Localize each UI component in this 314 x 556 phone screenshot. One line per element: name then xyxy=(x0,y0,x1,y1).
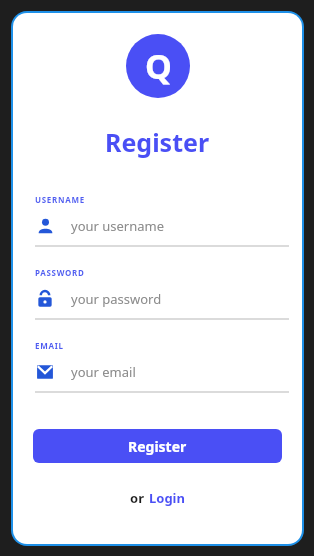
staticText: Login xyxy=(149,489,185,507)
other: Username xyxy=(37,218,54,235)
other: Email xyxy=(36,363,54,381)
staticText: Register xyxy=(105,125,210,159)
button[interactable]: USERNAME xyxy=(23,194,292,247)
staticText: USERNAME xyxy=(35,194,85,205)
staticText: your email xyxy=(71,363,136,381)
button[interactable]: EMAIL xyxy=(23,340,292,393)
staticText: your password xyxy=(71,290,162,308)
staticText: EMAIL xyxy=(35,340,64,351)
button[interactable]: Register xyxy=(33,429,282,463)
button[interactable]: PASSWORD xyxy=(23,267,292,320)
staticText: Q xyxy=(145,43,172,89)
other: Password xyxy=(36,290,54,308)
staticText: Register xyxy=(128,437,187,456)
button[interactable]: Login xyxy=(149,489,185,507)
staticText: PASSWORD xyxy=(35,267,85,278)
staticText: or xyxy=(130,489,144,507)
staticText: your username xyxy=(71,217,165,235)
